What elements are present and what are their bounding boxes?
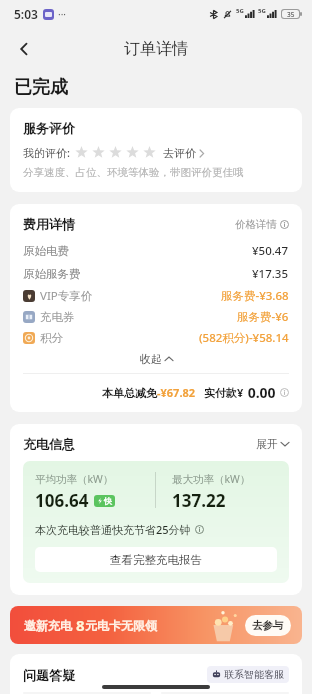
staticText: 订单详情 [124,39,188,59]
staticText: ¥17.35 [252,266,289,282]
staticText: 137.22 [172,489,226,512]
staticText: 分享速度、占位、环境等体验，带图评价更佳哦 [23,166,244,179]
button[interactable]: 收起 [23,352,289,366]
staticText: -¥67.82 [157,385,196,400]
staticText: VIP专享价 [40,288,93,304]
staticText: (582积分)-¥58.14 [199,330,289,346]
staticText: 实付款¥ [204,385,244,400]
staticText: 问题答疑 [23,667,75,683]
staticText: 已完成 [14,76,68,99]
staticText: 本次充电较普通快充节省25分钟 [35,522,191,537]
staticText: 邀新充电 [24,618,72,633]
staticText: 5G [236,7,244,15]
staticText: 充电信息 [23,436,75,452]
button[interactable]: 返回 [8,33,40,65]
staticText: 联系智能客服 [224,668,284,681]
staticText: 服务费-¥3.68 [221,288,289,304]
button[interactable]: 去参与 [245,615,291,636]
staticText: 106.64 [35,489,89,512]
button[interactable]: 查看完整充电报告 [35,547,277,572]
button[interactable]: 邀新充电 [10,606,302,644]
staticText: 服务评价 [23,120,75,136]
staticText: 收起 [140,352,162,366]
staticText: 服务费-¥6 [237,309,289,325]
button[interactable]: 价格详情 [235,218,289,231]
staticText: 我的评价: [23,145,70,160]
staticText: 积分 [40,331,63,345]
staticText: 展开 [256,437,278,451]
staticText: 去参与 [252,619,284,632]
staticText: ··· [58,7,67,21]
staticText: 快 [104,496,112,506]
staticText: 0.00 [244,383,276,402]
staticText: 元电卡无限领 [85,618,157,633]
staticText: 平均功率（kW） [35,472,114,486]
staticText: 充电券 [40,310,75,324]
staticText: 价格详情 [235,218,277,231]
staticText: 原始电费 [23,244,69,258]
staticText: 原始服务费 [23,267,81,281]
staticText: 35 [287,10,295,18]
staticText: 去评价 [163,146,196,160]
staticText: 8 [76,615,85,635]
staticText: 5:03 [14,6,38,22]
staticText: 本单总减免 [102,386,157,400]
button[interactable]: 联系智能客服 [207,666,289,683]
button[interactable]: 去评价 [163,146,205,160]
staticText: ¥50.47 [252,243,289,259]
staticText: 费用详情 [23,216,75,232]
button[interactable]: 展开 [256,437,289,451]
staticText: 查看完整充电报告 [110,553,202,567]
staticText: 5G [258,7,266,15]
staticText: 最大功率（kW） [172,472,251,486]
